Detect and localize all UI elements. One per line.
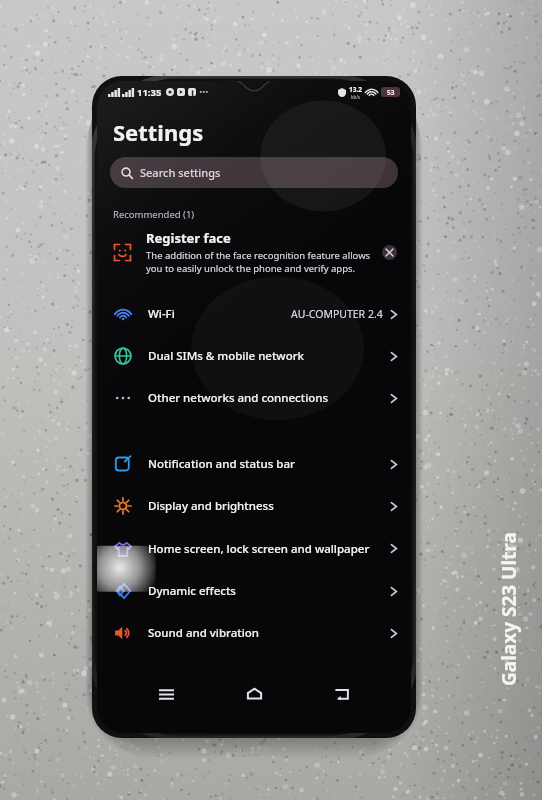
staticText: Search settings xyxy=(140,165,221,180)
button[interactable]: Dual SIMs & mobile network xyxy=(97,335,411,377)
button[interactable]: Home xyxy=(235,677,273,711)
staticText: Dynamic effects xyxy=(148,583,236,599)
button[interactable]: Display and brightness xyxy=(97,485,411,527)
staticText: AU-COMPUTER 2.4 xyxy=(291,307,383,321)
button[interactable]: Register face xyxy=(97,227,411,277)
staticText: Dual SIMs & mobile network xyxy=(148,348,304,364)
button[interactable]: Sound and vibration xyxy=(97,612,411,654)
staticText: 11:35 xyxy=(137,86,162,99)
staticText: Settings xyxy=(113,117,204,147)
staticText: Recommended (1) xyxy=(113,208,195,221)
staticText: Wi-Fi xyxy=(148,306,175,322)
button[interactable]: Search settings xyxy=(110,157,398,188)
staticText: Sound and vibration xyxy=(148,625,260,641)
staticText: Register face xyxy=(146,229,231,247)
button[interactable]: Recent apps xyxy=(147,677,185,711)
staticText: kb/s xyxy=(351,94,360,100)
staticText: Notification and status bar xyxy=(148,456,295,472)
button[interactable]: Notification and status bar xyxy=(97,443,411,485)
staticText: The addition of the face recognition fea… xyxy=(146,249,374,275)
staticText: 13.2 xyxy=(349,85,362,94)
button[interactable]: Other networks and connections xyxy=(97,377,411,419)
button[interactable]: Back xyxy=(323,677,361,711)
button[interactable]: Wi-Fi xyxy=(97,293,411,335)
staticText: Home screen, lock screen and wallpaper xyxy=(148,541,370,557)
staticText: Galaxy S23 Ultra xyxy=(496,532,522,686)
staticText: Other networks and connections xyxy=(148,390,329,406)
button[interactable]: Home screen, lock screen and wallpaper xyxy=(97,527,411,570)
button[interactable]: Dismiss recommendation xyxy=(382,245,397,260)
staticText: 53 xyxy=(387,88,395,97)
staticText: Display and brightness xyxy=(148,498,274,514)
staticText: ⋯ xyxy=(199,87,208,97)
button[interactable]: Dynamic effects xyxy=(97,570,411,612)
